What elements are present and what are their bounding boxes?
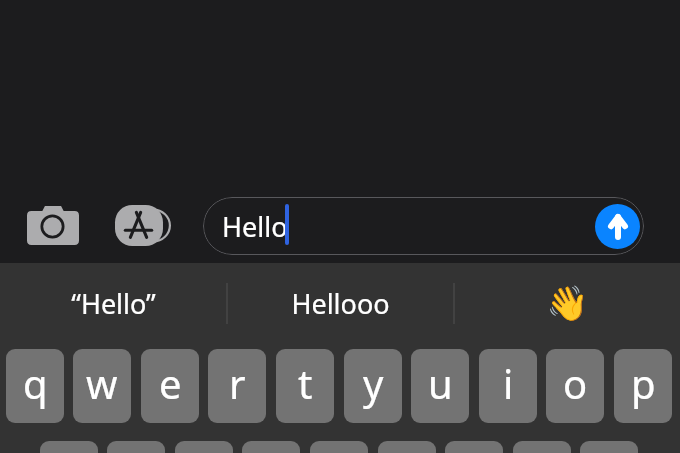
- staticText: “Hello”: [71, 285, 156, 322]
- staticText: 👋: [546, 283, 589, 323]
- button[interactable]: g: [310, 441, 368, 453]
- button[interactable]: l: [580, 441, 638, 453]
- staticText: w: [86, 356, 118, 410]
- staticText: q: [23, 356, 48, 410]
- button[interactable]: App Store: [103, 196, 183, 256]
- staticText: o: [563, 356, 588, 410]
- button[interactable]: h: [378, 441, 436, 453]
- staticText: Hellooo: [291, 285, 390, 322]
- button[interactable]: Hellooo: [228, 263, 453, 343]
- button[interactable]: o: [546, 349, 604, 423]
- staticText: u: [428, 356, 453, 410]
- button[interactable]: s: [107, 441, 165, 453]
- button[interactable]: d: [175, 441, 233, 453]
- button[interactable]: t: [276, 349, 334, 423]
- staticText: r: [229, 356, 246, 410]
- staticText: p: [631, 356, 656, 410]
- button[interactable]: q: [6, 349, 64, 423]
- staticText: t: [298, 356, 313, 410]
- button[interactable]: j: [445, 441, 503, 453]
- button[interactable]: i: [479, 349, 537, 423]
- button[interactable]: y: [344, 349, 402, 423]
- button[interactable]: u: [411, 349, 469, 423]
- button[interactable]: a: [40, 441, 98, 453]
- button[interactable]: 👋: [455, 263, 680, 343]
- button[interactable]: Send: [595, 204, 640, 249]
- button[interactable]: e: [141, 349, 199, 423]
- staticText: e: [159, 356, 182, 410]
- staticText: i: [503, 356, 514, 410]
- button[interactable]: k: [513, 441, 571, 453]
- button[interactable]: Camera: [16, 196, 88, 256]
- button[interactable]: “Hello”: [0, 263, 226, 343]
- button[interactable]: f: [242, 441, 300, 453]
- button[interactable]: w: [73, 349, 131, 423]
- button[interactable]: Hello: [203, 197, 644, 255]
- staticText: y: [363, 356, 384, 410]
- button[interactable]: r: [208, 349, 266, 423]
- button[interactable]: p: [614, 349, 672, 423]
- staticText: Hello: [222, 208, 288, 245]
